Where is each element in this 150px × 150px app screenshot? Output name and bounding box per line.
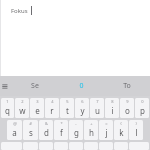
staticText: (: [120, 121, 122, 126]
staticText: j: [105, 127, 108, 138]
staticText: i: [111, 105, 114, 116]
staticText: 9: [126, 99, 129, 104]
staticText: q: [5, 105, 10, 116]
button[interactable]: @: [7, 120, 22, 140]
staticText: &: [45, 121, 48, 126]
staticText: 3: [36, 99, 39, 104]
staticText: ): [135, 121, 137, 126]
button[interactable]: [99, 142, 113, 150]
button[interactable]: 7: [90, 98, 104, 118]
button[interactable]: +: [84, 120, 98, 140]
button[interactable]: Fokus: [0, 0, 150, 76]
button[interactable]: #: [23, 120, 38, 140]
staticText: 7: [96, 99, 99, 104]
staticText: k: [119, 127, 124, 138]
button[interactable]: 2: [15, 98, 29, 118]
button[interactable]: 4: [45, 98, 59, 118]
staticText: d: [44, 127, 49, 138]
button[interactable]: [114, 142, 128, 150]
staticText: Se: [31, 81, 39, 91]
button[interactable]: [54, 142, 68, 150]
staticText: +: [90, 121, 93, 126]
button[interactable]: -: [69, 120, 83, 140]
button[interactable]: 8: [105, 98, 119, 118]
staticText: -: [75, 121, 77, 126]
staticText: p: [140, 105, 145, 116]
staticText: *: [60, 121, 63, 126]
button[interactable]: 1: [1, 98, 14, 118]
button[interactable]: Se: [11, 76, 58, 96]
staticText: 0: [141, 99, 144, 104]
staticText: 4: [51, 99, 54, 104]
staticText: a: [12, 127, 17, 138]
button[interactable]: ): [129, 120, 143, 140]
staticText: e: [35, 105, 40, 116]
staticText: 0: [79, 81, 84, 91]
button[interactable]: =: [99, 120, 113, 140]
button[interactable]: 3: [30, 98, 44, 118]
staticText: o: [125, 105, 130, 116]
button[interactable]: 5: [60, 98, 74, 118]
staticText: l: [135, 127, 138, 138]
staticText: To: [123, 81, 131, 91]
button[interactable]: 0: [135, 98, 149, 118]
button[interactable]: &: [39, 120, 53, 140]
button[interactable]: [69, 142, 83, 150]
button[interactable]: (: [114, 120, 128, 140]
staticText: 8: [111, 99, 114, 104]
staticText: h: [89, 127, 94, 138]
button[interactable]: [84, 142, 98, 150]
staticText: Fokus: [11, 7, 28, 15]
staticText: 6: [81, 99, 84, 104]
button[interactable]: 9: [120, 98, 134, 118]
button[interactable]: 6: [75, 98, 89, 118]
button[interactable]: [39, 142, 53, 150]
staticText: 2: [21, 99, 24, 104]
button[interactable]: More options: [0, 76, 10, 96]
staticText: t: [66, 105, 69, 116]
staticText: r: [50, 105, 54, 116]
staticText: g: [74, 127, 79, 138]
staticText: y: [80, 105, 85, 116]
staticText: @: [13, 121, 17, 126]
staticText: 1: [6, 99, 9, 104]
button[interactable]: 0: [58, 76, 104, 96]
staticText: u: [95, 105, 100, 116]
staticText: =: [105, 121, 108, 126]
staticText: f: [60, 127, 63, 138]
staticText: s: [29, 127, 33, 138]
staticText: w: [19, 105, 26, 116]
staticText: 5: [66, 99, 69, 104]
button[interactable]: *: [54, 120, 68, 140]
button[interactable]: To: [104, 76, 150, 96]
staticText: #: [29, 121, 32, 126]
